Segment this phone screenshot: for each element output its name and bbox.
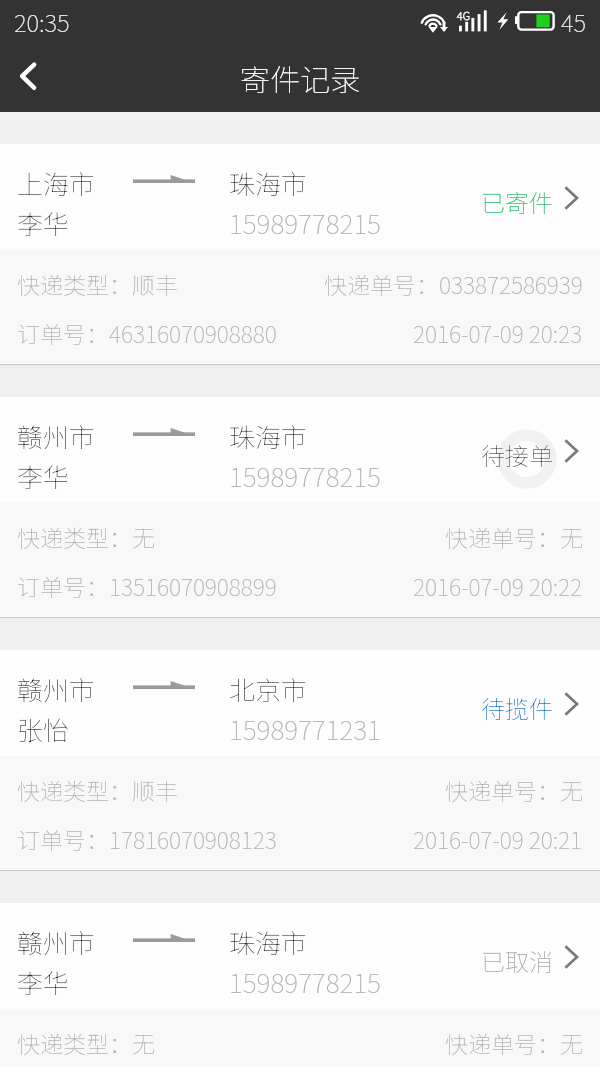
- staticText: 订单号：17816070908123: [17, 822, 277, 855]
- staticText: 珠海市: [229, 164, 308, 202]
- staticText: 2016-07-09 20:23: [413, 316, 583, 349]
- staticText: 赣州市: [17, 417, 96, 455]
- staticText: 北京市: [229, 670, 308, 708]
- staticText: 李华: [17, 963, 70, 1001]
- button[interactable]: 赣州市: [0, 650, 600, 869]
- staticText: 15989778215: [229, 962, 381, 1000]
- button[interactable]: 待揽件: [481, 689, 578, 724]
- button[interactable]: 已寄件: [481, 183, 578, 218]
- staticText: 4G: [457, 7, 471, 23]
- staticText: 快递类型：无: [17, 1026, 155, 1059]
- staticText: 快递类型：顺丰: [17, 773, 178, 806]
- other: Open details: [564, 692, 578, 717]
- staticText: 15989771231: [229, 709, 381, 747]
- staticText: 快递单号：无: [445, 520, 583, 553]
- staticText: 珠海市: [229, 923, 308, 961]
- button[interactable]: Back: [0, 40, 56, 112]
- button[interactable]: 赣州市: [0, 397, 600, 616]
- staticText: 寄件记录: [240, 56, 360, 99]
- staticText: 已寄件: [481, 184, 553, 219]
- staticText: 待揽件: [481, 690, 553, 725]
- staticText: 张怡: [17, 710, 70, 748]
- button[interactable]: 已取消: [481, 942, 578, 977]
- button[interactable]: 上海市: [0, 144, 600, 363]
- staticText: 2016-07-09 20:21: [413, 822, 583, 855]
- staticText: 珠海市: [229, 417, 308, 455]
- other: Open details: [564, 439, 578, 464]
- staticText: 15989778215: [229, 456, 381, 494]
- staticText: 待接单: [481, 437, 553, 472]
- staticText: 李华: [17, 457, 70, 495]
- button[interactable]: 待接单: [481, 436, 578, 471]
- staticText: 快递单号：无: [445, 773, 583, 806]
- staticText: 15989778215: [229, 203, 381, 241]
- staticText: 快递类型：无: [17, 520, 155, 553]
- button[interactable]: 赣州市: [0, 903, 600, 1067]
- staticText: 快递类型：顺丰: [17, 267, 178, 300]
- staticText: 快递单号：无: [445, 1026, 583, 1059]
- staticText: 20:35: [14, 4, 70, 39]
- other: Open details: [564, 945, 578, 970]
- other: Open details: [564, 186, 578, 211]
- staticText: 45: [561, 4, 587, 39]
- staticText: 2016-07-09 20:22: [413, 569, 583, 602]
- staticText: 李华: [17, 204, 70, 242]
- staticText: 赣州市: [17, 923, 96, 961]
- staticText: 快递单号：033872586939: [324, 267, 583, 300]
- staticText: 已取消: [481, 943, 553, 978]
- staticText: 上海市: [17, 164, 96, 202]
- staticText: 订单号：13516070908899: [17, 569, 277, 602]
- staticText: 订单号：46316070908880: [17, 316, 277, 349]
- staticText: 赣州市: [17, 670, 96, 708]
